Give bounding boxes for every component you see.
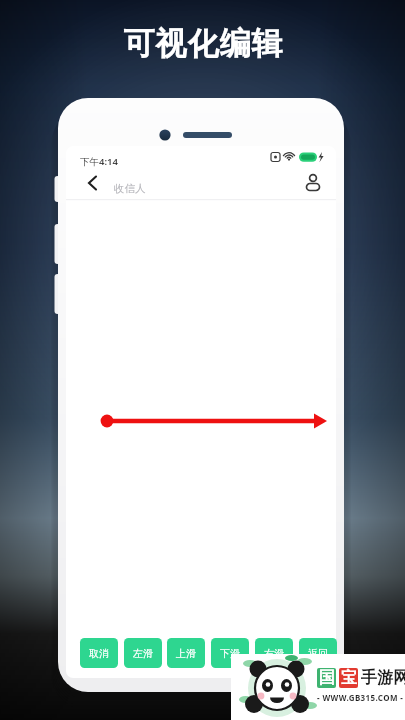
button[interactable]: 取消: [80, 638, 118, 668]
staticText: 上滑: [176, 647, 196, 660]
staticText: 宝: [341, 668, 357, 688]
button[interactable]: 右滑: [255, 638, 293, 668]
button[interactable]: 收信人: [108, 176, 288, 200]
button[interactable]: Contacts: [300, 172, 330, 200]
staticText: 取消: [89, 647, 109, 660]
staticText: 国: [319, 668, 335, 688]
button[interactable]: 上滑: [167, 638, 205, 668]
staticText: 收信人: [114, 182, 146, 195]
staticText: - WWW.GB315.COM -: [317, 692, 404, 703]
staticText: 可视化编辑: [123, 24, 283, 63]
staticText: 左滑: [133, 647, 153, 660]
staticText: 下午4:14: [80, 155, 118, 168]
button[interactable]: 下滑: [211, 638, 249, 668]
staticText: 返回: [308, 647, 328, 660]
button[interactable]: 左滑: [124, 638, 162, 668]
staticText: 下滑: [220, 647, 240, 660]
button[interactable]: 返回: [299, 638, 337, 668]
button[interactable]: Back: [80, 172, 110, 200]
staticText: 右滑: [264, 647, 284, 660]
staticText: 手游网: [361, 668, 405, 688]
